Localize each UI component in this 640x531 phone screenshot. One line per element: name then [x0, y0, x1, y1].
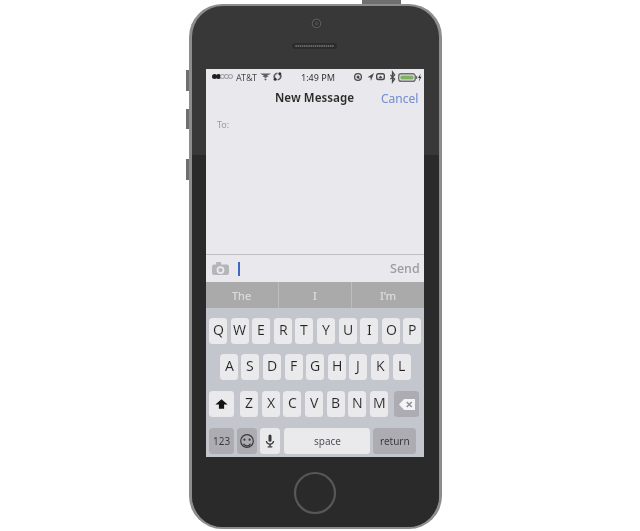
button[interactable]: L: [393, 354, 411, 380]
staticText: return: [380, 434, 410, 448]
staticText: Cancel: [381, 90, 419, 105]
staticText: A: [225, 356, 234, 375]
button[interactable]: N: [348, 391, 366, 417]
staticText: I'm: [380, 288, 397, 303]
button[interactable]: H: [328, 354, 346, 380]
staticText: W: [233, 320, 247, 339]
button[interactable]: O: [382, 318, 400, 344]
staticText: space: [314, 434, 341, 448]
button[interactable]: P: [403, 318, 421, 344]
button[interactable]: I: [360, 318, 378, 344]
button[interactable]: X: [262, 391, 280, 417]
button[interactable]: return: [373, 428, 416, 454]
staticText: M: [373, 393, 386, 412]
button[interactable]: Attach photo: [210, 260, 231, 277]
button[interactable]: E: [252, 318, 270, 344]
button[interactable]: K: [371, 354, 389, 380]
staticText: C: [288, 393, 297, 412]
staticText: E: [257, 320, 265, 339]
button[interactable]: Send: [384, 256, 424, 281]
staticText: I: [313, 288, 317, 303]
button[interactable]: A: [220, 354, 238, 380]
button[interactable]: G: [306, 354, 324, 380]
staticText: R: [279, 320, 288, 339]
staticText: Y: [322, 320, 330, 339]
button[interactable]: Q: [209, 318, 227, 344]
staticText: U: [343, 320, 354, 339]
staticText: X: [267, 393, 276, 412]
button[interactable]: Emoji: [237, 428, 257, 454]
staticText: The: [232, 288, 252, 303]
staticText: K: [376, 356, 385, 375]
staticText: To:: [217, 118, 230, 130]
staticText: Z: [245, 393, 254, 412]
staticText: P: [408, 320, 417, 339]
button[interactable]: M: [370, 391, 388, 417]
staticText: S: [246, 356, 254, 375]
staticText: G: [310, 356, 321, 375]
button[interactable]: D: [263, 354, 281, 380]
button[interactable]: J: [349, 354, 367, 380]
staticText: L: [398, 356, 406, 375]
staticText: V: [310, 393, 319, 412]
staticText: B: [331, 393, 341, 412]
staticText: N: [352, 393, 363, 412]
staticText: I: [367, 320, 372, 339]
button[interactable]: C: [283, 391, 301, 417]
button[interactable]: Cancel: [376, 86, 424, 109]
staticText: Send: [390, 260, 420, 277]
button[interactable]: I: [279, 282, 351, 308]
button[interactable]: Backspace: [394, 391, 419, 417]
button[interactable]: B: [327, 391, 345, 417]
staticText: H: [332, 356, 343, 375]
staticText: 123: [213, 434, 231, 448]
button[interactable]: Z: [240, 391, 258, 417]
staticText: O: [386, 320, 397, 339]
button[interactable]: U: [339, 318, 357, 344]
staticText: AT&T: [236, 71, 257, 83]
button[interactable]: 123: [209, 428, 234, 454]
button[interactable]: R: [274, 318, 292, 344]
button[interactable]: S: [241, 354, 259, 380]
button[interactable]: Y: [317, 318, 335, 344]
staticText: Q: [213, 320, 224, 339]
staticText: 1:49 PM: [301, 71, 335, 83]
button[interactable]: The: [206, 282, 278, 308]
staticText: New Message: [275, 90, 355, 106]
button[interactable]: V: [305, 391, 323, 417]
button[interactable]: Shift: [209, 391, 234, 417]
staticText: T: [300, 320, 308, 339]
staticText: F: [290, 356, 298, 375]
staticText: D: [267, 356, 278, 375]
button[interactable]: space: [284, 428, 370, 454]
button[interactable]: I'm: [352, 282, 424, 308]
button[interactable]: Dictation: [260, 428, 280, 454]
button[interactable]: T: [295, 318, 313, 344]
staticText: J: [356, 356, 360, 375]
button[interactable]: F: [285, 354, 303, 380]
button[interactable]: W: [231, 318, 249, 344]
